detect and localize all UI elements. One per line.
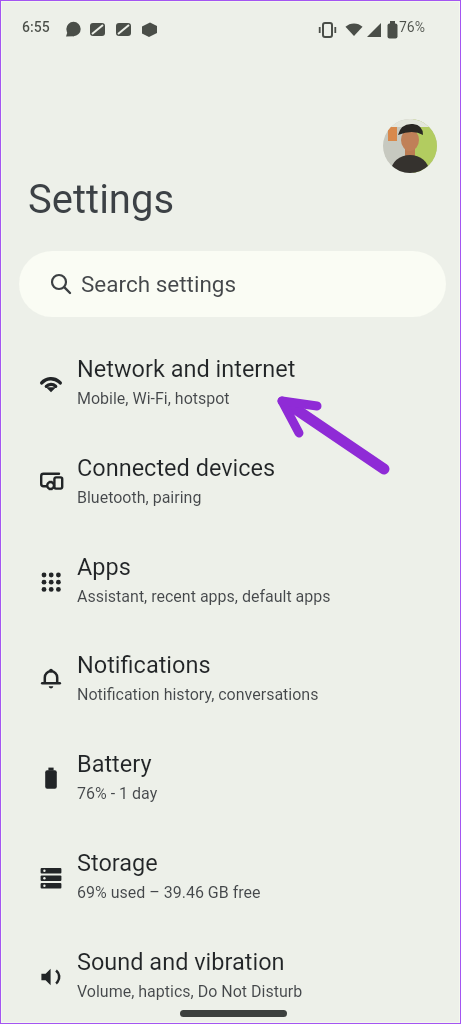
button[interactable]: Sound and vibration	[2, 936, 459, 1012]
staticText: Assistant, recent apps, default apps	[77, 587, 331, 606]
staticText: 76%	[399, 19, 425, 35]
staticText: 76% - 1 day	[77, 784, 158, 803]
staticText: Sound and vibration	[77, 948, 285, 976]
staticText: Search settings	[81, 271, 237, 297]
staticText: Notifications	[77, 651, 211, 679]
staticText: Bluetooth, pairing	[77, 488, 202, 507]
staticText: 69% used – 39.46 GB free	[77, 883, 261, 902]
staticText: Storage	[77, 849, 158, 877]
button[interactable]	[383, 119, 437, 173]
button[interactable]: Battery	[2, 738, 459, 814]
staticText: Settings	[28, 176, 175, 223]
button[interactable]: Apps	[2, 541, 459, 617]
staticText: Mobile, Wi-Fi, hotspot	[77, 389, 230, 408]
staticText: Network and internet	[77, 355, 296, 383]
button[interactable]: Network and internet	[2, 343, 459, 419]
button[interactable]: Notifications	[2, 639, 459, 715]
staticText: Battery	[77, 750, 152, 778]
button[interactable]: Connected devices	[2, 442, 459, 518]
staticText: 6:55	[22, 19, 50, 35]
staticText: Volume, haptics, Do Not Disturb	[77, 982, 303, 1001]
button[interactable]: Search settings	[19, 251, 446, 317]
staticText: Connected devices	[77, 454, 276, 482]
staticText: Apps	[77, 553, 131, 581]
button[interactable]: Storage	[2, 837, 459, 913]
staticText: Notification history, conversations	[77, 685, 319, 704]
